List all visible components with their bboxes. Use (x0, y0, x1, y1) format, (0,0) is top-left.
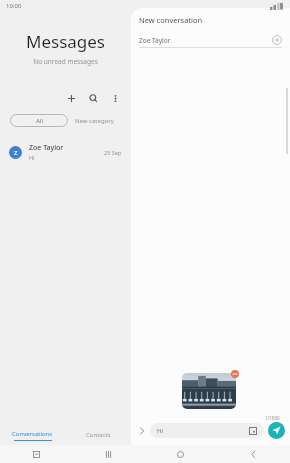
button[interactable]: More options (107, 90, 123, 106)
staticText: 25 Sep (104, 149, 122, 156)
button[interactable]: Send (268, 422, 285, 439)
staticText: New category (75, 117, 114, 125)
button[interactable]: Hide keyboard (0, 445, 72, 463)
button[interactable]: Attached image (182, 373, 236, 409)
other: Add recipient (272, 35, 282, 45)
staticText: Contacts (86, 431, 111, 439)
staticText: No unread messages (0, 57, 131, 66)
button[interactable]: New category (68, 114, 121, 127)
button[interactable]: Conversations (0, 425, 65, 445)
button[interactable]: Home (144, 445, 217, 463)
staticText: Zoe Taylor (29, 143, 64, 153)
button[interactable]: Expand (135, 424, 148, 437)
button[interactable]: Remove attachment (231, 370, 239, 378)
staticText: All (36, 117, 43, 125)
button[interactable]: Back (217, 445, 290, 463)
staticText: Z (14, 149, 18, 157)
button[interactable]: Z (0, 139, 131, 165)
staticText: Messages (0, 30, 131, 53)
button[interactable]: Hi (150, 423, 264, 438)
staticText: 10:00 (6, 2, 22, 10)
staticText: Zoe Taylor (139, 36, 272, 45)
staticText: Hi (157, 427, 249, 435)
staticText: New conversation (139, 15, 203, 25)
button[interactable]: New conversation (63, 90, 79, 106)
staticText: 1/1000 (265, 415, 280, 421)
button[interactable]: Contacts (65, 425, 131, 445)
button[interactable]: Search (85, 90, 101, 106)
staticText: Conversations (12, 430, 53, 438)
button[interactable]: All (10, 114, 68, 127)
staticText: Hi (29, 154, 35, 161)
button[interactable]: Zoe Taylor (139, 33, 282, 47)
button[interactable]: Recents (72, 445, 144, 463)
other: Stickers (249, 427, 257, 435)
